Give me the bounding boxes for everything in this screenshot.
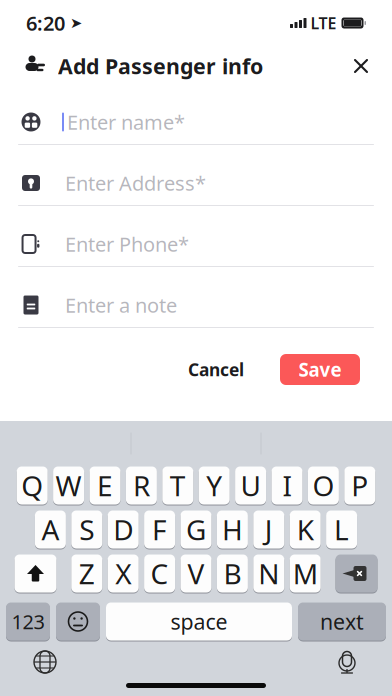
button[interactable]: K [290, 510, 321, 549]
button[interactable]: Enter Address* [0, 161, 392, 206]
staticText: Cancel [188, 358, 244, 381]
staticText: L [334, 511, 349, 548]
button[interactable]: H [217, 510, 248, 549]
button[interactable]: Q [17, 466, 48, 505]
button[interactable]: C [144, 554, 175, 593]
button[interactable]: Close [344, 49, 378, 83]
button[interactable]: G [180, 510, 211, 549]
staticText: E [97, 467, 113, 504]
staticText: P [351, 467, 368, 504]
staticText: Q [21, 467, 43, 504]
staticText: Y [206, 467, 222, 504]
button[interactable]: E [89, 466, 120, 505]
button[interactable]: J [253, 510, 284, 549]
staticText: Z [79, 555, 95, 592]
staticText: 6:20 [26, 10, 65, 36]
button[interactable]: Y [199, 466, 230, 505]
staticText: Enter a note [65, 292, 177, 318]
staticText: C [151, 555, 169, 592]
staticText: Enter name* [67, 109, 185, 135]
button[interactable]: Enter a note [0, 283, 392, 328]
button[interactable]: W [53, 466, 84, 505]
staticText: O [312, 467, 334, 504]
button[interactable]: A [35, 510, 66, 549]
button[interactable]: Enter name* [0, 100, 392, 145]
staticText: J [265, 511, 273, 548]
staticText: 123 [11, 608, 44, 635]
staticText: H [222, 511, 243, 548]
button[interactable]: N [253, 554, 284, 593]
staticText: B [223, 555, 241, 592]
staticText: R [133, 467, 150, 504]
button[interactable]: Save [280, 354, 360, 385]
staticText: next [320, 607, 364, 636]
staticText: ➤ [65, 15, 82, 31]
button[interactable]: F [144, 510, 175, 549]
staticText: D [113, 511, 133, 548]
staticText: F [152, 511, 167, 548]
staticText: Enter Phone* [65, 231, 189, 257]
button[interactable]: X [108, 554, 139, 593]
staticText: Enter Address* [65, 170, 206, 196]
button[interactable]: Enter Phone* [0, 222, 392, 267]
staticText: N [258, 555, 279, 592]
button[interactable]: M [290, 554, 321, 593]
button[interactable]: O [308, 466, 339, 505]
button[interactable]: Delete [335, 554, 377, 593]
staticText: Save [298, 357, 341, 382]
button[interactable]: space [106, 602, 292, 641]
staticText: G [186, 511, 206, 548]
staticText: Add Passenger info [58, 52, 263, 80]
button[interactable]: Shift [14, 554, 56, 593]
staticText: V [187, 555, 204, 592]
staticText: LTE [310, 12, 336, 34]
button[interactable]: Cancel [178, 350, 254, 389]
staticText: U [241, 467, 261, 504]
staticText: space [170, 607, 227, 636]
button[interactable]: Dictate [330, 645, 364, 679]
staticText: T [170, 467, 186, 504]
button[interactable]: V [180, 554, 211, 593]
button[interactable]: S [71, 510, 102, 549]
staticText: X [115, 555, 131, 592]
staticText: A [41, 511, 59, 548]
staticText: W [56, 467, 82, 504]
button[interactable]: Emoji [56, 602, 100, 641]
staticText: M [293, 555, 318, 592]
button[interactable]: Z [71, 554, 102, 593]
staticText: S [79, 511, 94, 548]
button[interactable]: Add Passenger info [22, 52, 263, 80]
button[interactable]: U [235, 466, 266, 505]
button[interactable]: Next keyboard [28, 645, 62, 679]
button[interactable]: L [326, 510, 357, 549]
button[interactable]: I [271, 466, 302, 505]
staticText: I [282, 467, 291, 504]
button[interactable]: D [108, 510, 139, 549]
button[interactable]: next [298, 602, 386, 641]
button[interactable]: B [217, 554, 248, 593]
button[interactable]: T [162, 466, 193, 505]
button[interactable]: P [344, 466, 375, 505]
button[interactable]: 123 [6, 602, 50, 641]
staticText: K [297, 511, 314, 548]
button[interactable]: R [126, 466, 157, 505]
